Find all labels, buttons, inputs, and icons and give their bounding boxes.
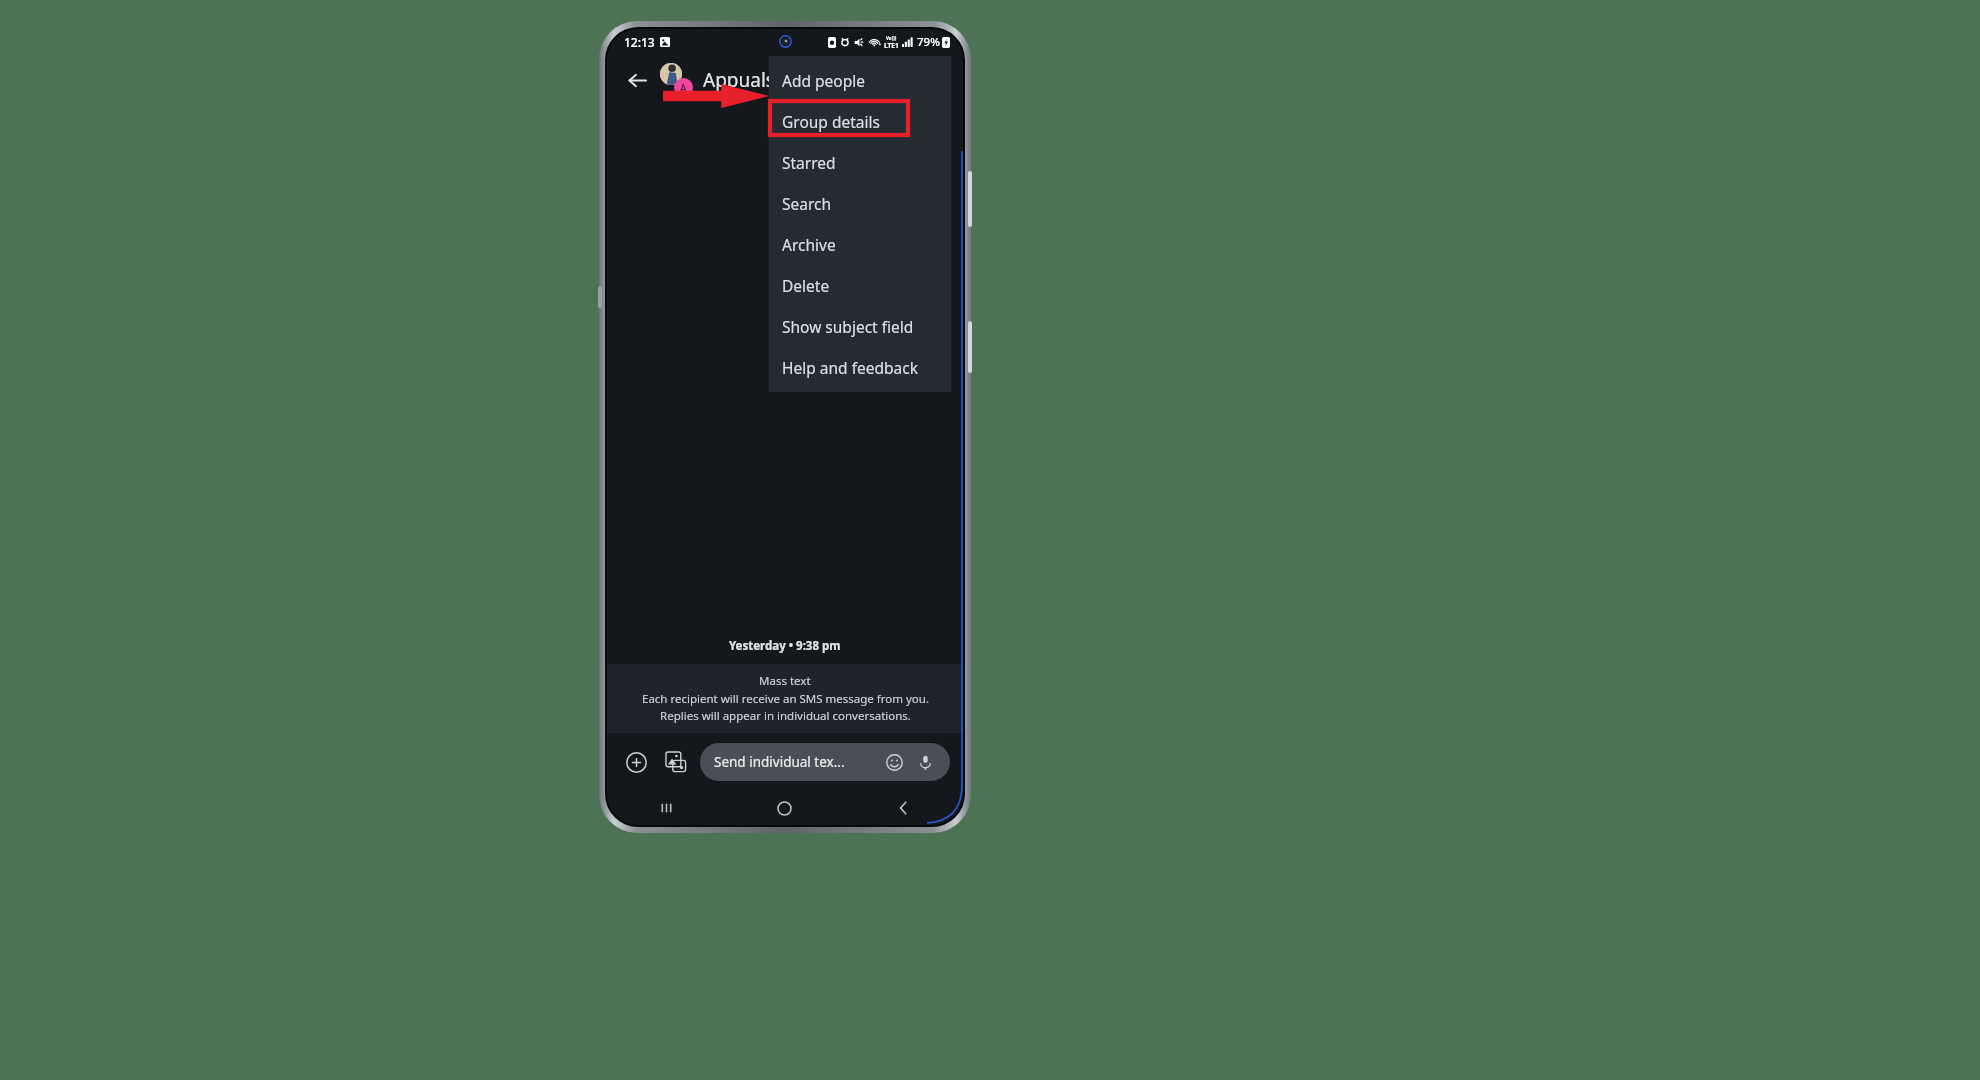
button[interactable]: Help and feedback	[769, 347, 951, 388]
staticText: Send individual tex...	[714, 753, 883, 771]
button[interactable]: Send individual tex...	[700, 743, 950, 781]
button[interactable]: Starred	[769, 142, 951, 183]
button[interactable]: Search	[769, 183, 951, 224]
staticText: Vo)))	[886, 35, 897, 41]
button[interactable]: Show subject field	[769, 306, 951, 347]
staticText: Search	[782, 193, 832, 214]
button[interactable]: Recent apps	[607, 791, 725, 825]
button[interactable]: Add people	[769, 60, 951, 101]
button[interactable]: Voice input	[914, 751, 936, 773]
button[interactable]: Back	[844, 791, 963, 825]
staticText: 79%	[917, 34, 940, 50]
staticText: Replies will appear in individual conver…	[660, 708, 911, 724]
button[interactable]: Home	[725, 791, 844, 825]
staticText: A	[680, 81, 687, 95]
button[interactable]: Archive	[769, 224, 951, 265]
staticText: Help and feedback	[782, 357, 918, 378]
staticText: LTE1	[884, 41, 899, 50]
other: Pointer arrow	[663, 83, 769, 109]
button[interactable]: Attach	[620, 746, 652, 778]
button[interactable]: Back	[619, 62, 655, 98]
staticText: Delete	[782, 275, 830, 296]
button[interactable]: Group details	[769, 101, 951, 142]
staticText: Add people	[782, 70, 865, 91]
staticText: 12:13	[624, 34, 655, 50]
button[interactable]: Delete	[769, 265, 951, 306]
staticText: Archive	[782, 234, 836, 255]
staticText: Appuals	[703, 67, 775, 93]
staticText: Starred	[782, 152, 836, 173]
button[interactable]: Gallery	[660, 746, 692, 778]
staticText: Show subject field	[782, 316, 914, 337]
staticText: Mass text	[759, 673, 811, 689]
staticText: Yesterday • 9:38 pm	[729, 638, 841, 654]
staticText: Each recipient will receive an SMS messa…	[642, 691, 929, 707]
staticText: Group details	[782, 111, 880, 132]
button[interactable]: Emoji	[883, 751, 905, 773]
